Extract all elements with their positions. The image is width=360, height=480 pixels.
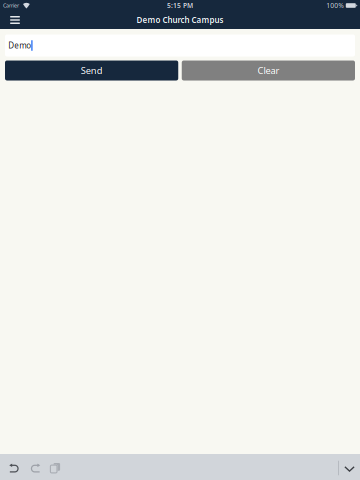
staticText: Send — [81, 64, 103, 77]
button[interactable]: Clear — [182, 60, 355, 80]
staticText: Carrier — [3, 2, 19, 9]
staticText: 100% — [326, 1, 344, 10]
button[interactable]: Send — [5, 60, 178, 80]
staticText: Clear — [257, 64, 279, 77]
staticText: 5:15 PM — [167, 1, 193, 10]
staticText: Demo — [8, 40, 31, 51]
button[interactable]: Hide keyboard — [339, 454, 360, 480]
button[interactable]: Undo — [4, 454, 25, 480]
button[interactable]: Menu — [0, 11, 30, 29]
button[interactable]: Paste — [45, 454, 65, 480]
button[interactable]: Redo — [25, 454, 45, 480]
staticText: Demo Church Campus — [136, 15, 223, 25]
